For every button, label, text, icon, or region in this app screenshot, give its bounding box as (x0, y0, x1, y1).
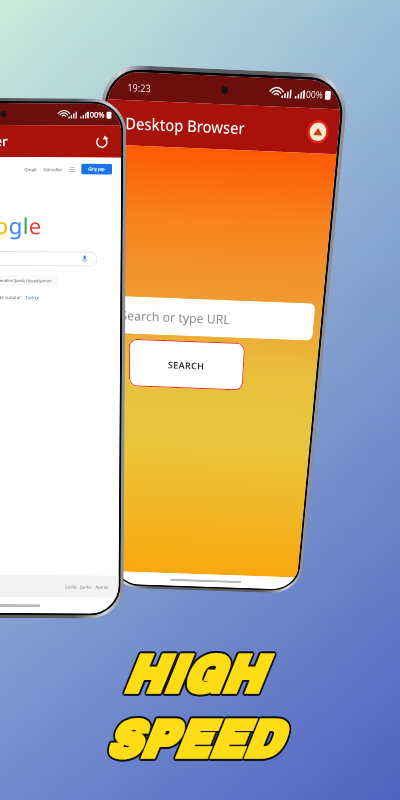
staticText: Türkçe (25, 294, 40, 300)
staticText: HIGH (123, 648, 261, 706)
staticText: SPEED (104, 713, 279, 771)
staticText: HIGH (121, 646, 259, 704)
staticText: SPEED (105, 709, 280, 767)
staticText: SPEED (103, 713, 278, 771)
staticText: HIGH (123, 647, 262, 705)
staticText: o (0, 210, 9, 240)
button[interactable]: Giriş yap (88, 166, 105, 172)
staticText: SPEED (103, 712, 278, 770)
staticText: SPEED (106, 710, 281, 768)
staticText: SPEED (103, 709, 278, 767)
staticText: SPEED (104, 709, 279, 767)
button[interactable]: Voice search (0, 250, 98, 267)
staticText: HIGH (121, 648, 259, 706)
staticText: SPEED (106, 711, 281, 769)
staticText: HIGH (121, 647, 259, 705)
button[interactable]: Desktop Browser (0, 124, 121, 158)
staticText: HIGH (122, 645, 260, 703)
staticText: HIGH (122, 648, 260, 706)
staticText: g (9, 210, 23, 240)
staticText: SPEED (104, 712, 279, 770)
staticText: 100% (301, 87, 324, 101)
staticText: SPEED (102, 711, 277, 769)
staticText: SEARCH (168, 358, 205, 372)
staticText: l (23, 210, 29, 240)
staticText: HIGH (122, 647, 260, 705)
staticText: SPEED (103, 710, 278, 768)
button[interactable]: Desktop Browser (107, 99, 341, 154)
staticText: SPEED (104, 710, 279, 768)
staticText: Kendimi Şanslı Hissediyorum (0, 278, 52, 283)
staticText: HIGH (121, 645, 259, 703)
staticText: SPEED (105, 713, 280, 771)
staticText: SPEED (104, 711, 279, 769)
staticText: Google şu dilde de sunulur: (0, 294, 25, 300)
staticText: SPEED (103, 711, 278, 769)
staticText: Görseller (43, 166, 63, 172)
staticText: HIGH (120, 647, 258, 705)
staticText: 100% (85, 109, 106, 120)
staticText: SPEED (104, 711, 279, 769)
staticText: SPEED (105, 712, 280, 770)
staticText: HIGH (123, 644, 261, 702)
staticText: SPEED (106, 712, 281, 770)
staticText: SPEED (105, 710, 280, 768)
staticText: HIGH (123, 646, 262, 704)
staticText: Search or type URL (120, 306, 230, 327)
staticText: HIGH (123, 647, 261, 705)
staticText: HIGH (121, 644, 259, 702)
staticText: HIGH (122, 644, 260, 702)
staticText: HIGH (123, 645, 261, 703)
other: Voice search (83, 255, 87, 262)
staticText: Desktop Browser (125, 112, 246, 139)
staticText: 19:23 (127, 79, 151, 95)
button[interactable]: App menu (309, 122, 327, 141)
staticText: Desktop Browser (0, 131, 8, 150)
staticText: SPEED (102, 712, 277, 770)
staticText: HIGH (123, 645, 262, 703)
staticText: HIGH (122, 646, 260, 704)
staticText: HIGH (120, 646, 258, 704)
button[interactable]: Reload (95, 136, 108, 149)
staticText: Gmail (24, 166, 37, 172)
staticText: HIGH (120, 645, 258, 703)
button[interactable]: SEARCH (129, 339, 245, 390)
staticText: HIGH (122, 646, 260, 704)
staticText: Giriş yap (88, 166, 105, 172)
staticText: SPEED (102, 710, 277, 768)
button[interactable]: Search or type URL (110, 295, 316, 341)
staticText: e (29, 210, 42, 240)
button[interactable]: Google apps (69, 166, 75, 172)
staticText: HIGH (123, 646, 261, 704)
staticText: SPEED (105, 711, 280, 769)
button[interactable]: Kendimi Şanslı Hissediyorum (0, 278, 52, 283)
staticText: Gizlilik Şartlar Ayarlar (65, 584, 110, 590)
